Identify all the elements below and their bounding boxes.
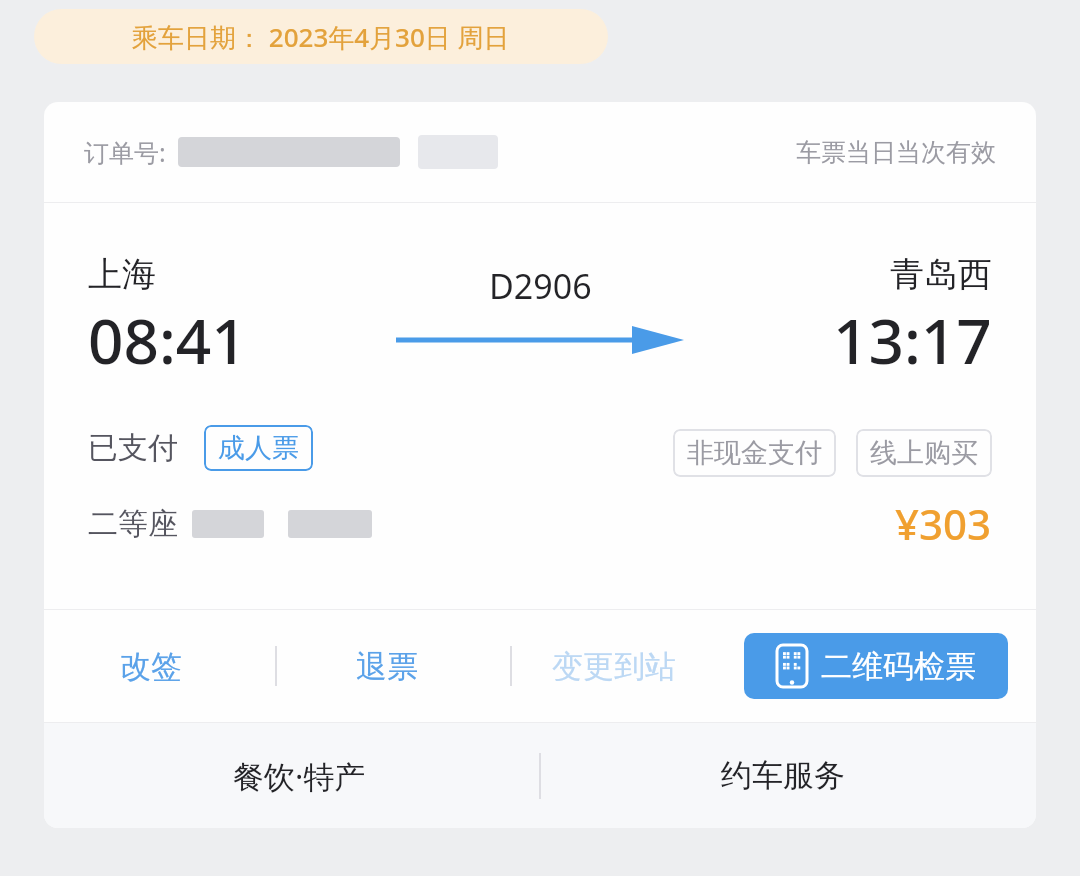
staticText: 二维码检票 bbox=[821, 647, 976, 686]
button[interactable]: 变更到站 bbox=[538, 635, 690, 698]
button[interactable]: 成人票 bbox=[204, 425, 313, 471]
button[interactable]: QR code ticket check bbox=[744, 633, 1008, 699]
button[interactable]: 乘车日期： 2023年4月30日 周日 bbox=[34, 9, 608, 64]
staticText: 改签 bbox=[120, 647, 182, 686]
staticText: 变更到站 bbox=[552, 647, 676, 686]
button[interactable]: 非现金支付 bbox=[673, 429, 836, 477]
staticText: 二等座 bbox=[88, 505, 178, 543]
staticText: 车票当日当次有效 bbox=[796, 137, 996, 168]
staticText: 上海 bbox=[88, 253, 156, 296]
staticText: 13:17 bbox=[833, 298, 992, 382]
other: QR code ticket check bbox=[777, 645, 807, 687]
staticText: 订单号: bbox=[84, 135, 166, 169]
staticText: 成人票 bbox=[218, 431, 299, 465]
staticText: 青岛西 bbox=[890, 253, 992, 296]
staticText: 非现金支付 bbox=[687, 436, 822, 470]
staticText: 乘车日期： 2023年4月30日 周日 bbox=[132, 19, 510, 55]
staticText: 退票 bbox=[356, 647, 418, 686]
staticText: 约车服务 bbox=[721, 756, 845, 795]
staticText: 08:41 bbox=[88, 298, 247, 382]
button[interactable]: 改签 bbox=[106, 635, 196, 698]
button[interactable]: 约车服务 bbox=[541, 723, 1036, 828]
staticText: D2906 bbox=[489, 263, 592, 309]
staticText: 餐饮·特产 bbox=[233, 755, 366, 797]
staticText: 已支付 bbox=[88, 429, 178, 467]
button[interactable]: 退票 bbox=[342, 635, 432, 698]
button[interactable]: 餐饮·特产 bbox=[44, 723, 539, 828]
staticText: ¥303 bbox=[895, 495, 992, 552]
staticText: 线上购买 bbox=[870, 436, 978, 470]
button[interactable]: 线上购买 bbox=[856, 429, 992, 477]
